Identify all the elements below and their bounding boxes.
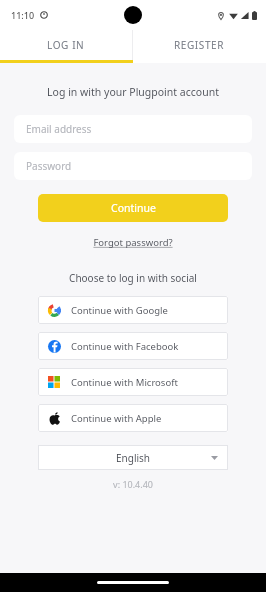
staticText: v: 10.4.40	[0, 478, 266, 490]
staticText: REGISTER	[174, 38, 225, 52]
button[interactable]: English	[38, 445, 228, 470]
button[interactable]: Password	[14, 152, 252, 180]
staticText: 11:10	[11, 9, 35, 21]
button[interactable]: LOG IN	[0, 30, 132, 60]
staticText: Log in with your Plugpoint account	[0, 85, 266, 99]
staticText: LOG IN	[47, 38, 85, 52]
staticText: Choose to log in with social	[0, 271, 266, 285]
staticText: English	[116, 451, 151, 465]
staticText: Continue with Facebook	[71, 340, 179, 353]
staticText: Continue	[111, 201, 156, 215]
button[interactable]: Continue with Microsoft	[38, 368, 228, 396]
button[interactable]: Continue with Facebook	[38, 332, 228, 360]
staticText: Continue with Google	[71, 304, 168, 317]
staticText: Email address	[26, 122, 92, 136]
staticText: Continue with Microsoft	[71, 376, 178, 389]
staticText: Continue with Apple	[71, 412, 162, 425]
button[interactable]: Continue	[38, 194, 228, 222]
staticText: Password	[26, 159, 72, 173]
button[interactable]: Email address	[14, 115, 252, 143]
button[interactable]: Continue with Apple	[38, 404, 228, 432]
button[interactable]: Continue with Google	[38, 296, 228, 324]
button[interactable]: Forgot password?	[0, 236, 266, 249]
button[interactable]: REGISTER	[133, 30, 266, 60]
